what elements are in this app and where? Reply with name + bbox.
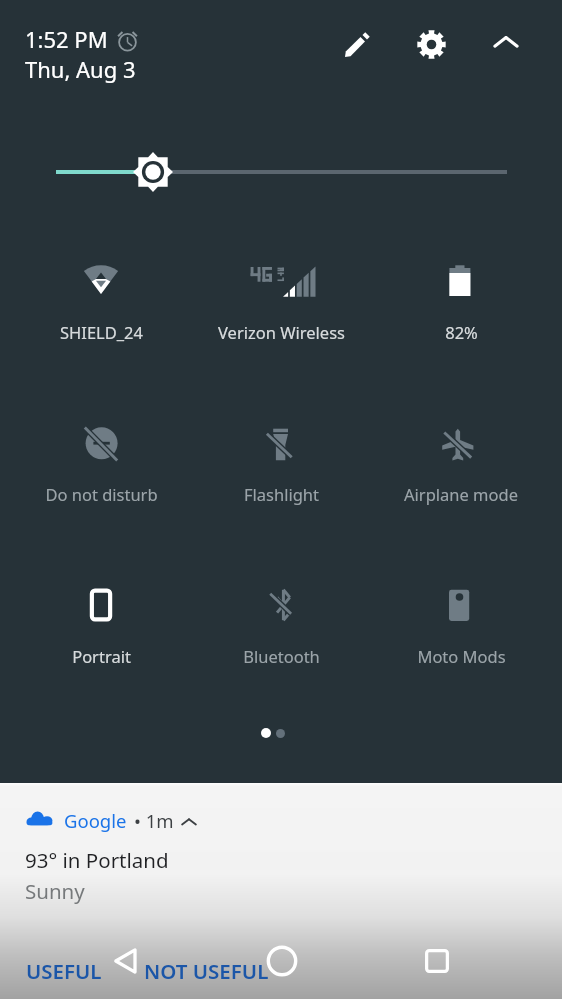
button[interactable]: NOT USEFUL: [144, 957, 269, 985]
staticText: USEFUL: [26, 957, 102, 985]
button[interactable]: 82%: [371, 259, 551, 343]
button[interactable]: Settings: [407, 20, 455, 68]
staticText: Do not disturb: [45, 483, 158, 505]
staticText: 1:52 PM: [25, 24, 108, 54]
staticText: 82%: [445, 321, 478, 343]
button[interactable]: Airplane mode: [371, 421, 551, 505]
button[interactable]: Back: [98, 933, 154, 989]
button[interactable]: Portrait: [11, 583, 191, 667]
button[interactable]: Flashlight: [191, 421, 371, 505]
button[interactable]: Do not disturb: [11, 421, 191, 505]
button[interactable]: Collapse: [482, 18, 530, 66]
staticText: Sunny: [25, 877, 85, 905]
staticText: SHIELD_24: [60, 321, 143, 343]
button[interactable]: Verizon Wireless: [191, 259, 371, 343]
staticText: Airplane mode: [404, 483, 518, 505]
staticText: Portrait: [72, 645, 131, 667]
staticText: Moto Mods: [417, 645, 506, 667]
button[interactable]: SHIELD_24: [11, 259, 191, 343]
button[interactable]: Brightness: [0, 146, 562, 198]
button[interactable]: Google: [26, 808, 197, 833]
button[interactable]: Home: [254, 933, 310, 989]
staticText: Google: [64, 808, 127, 833]
button[interactable]: Bluetooth: [191, 583, 371, 667]
staticText: 93° in Portland: [25, 846, 169, 874]
staticText: Bluetooth: [243, 645, 320, 667]
button[interactable]: Recents: [409, 933, 465, 989]
button[interactable]: Edit: [332, 20, 380, 68]
staticText: Flashlight: [244, 483, 319, 505]
button[interactable]: USEFUL: [26, 957, 102, 985]
button[interactable]: Moto Mods: [371, 583, 551, 667]
staticText: • 1m: [134, 808, 174, 833]
staticText: Verizon Wireless: [218, 321, 345, 343]
staticText: NOT USEFUL: [144, 957, 269, 985]
staticText: Thu, Aug 3: [25, 54, 136, 84]
